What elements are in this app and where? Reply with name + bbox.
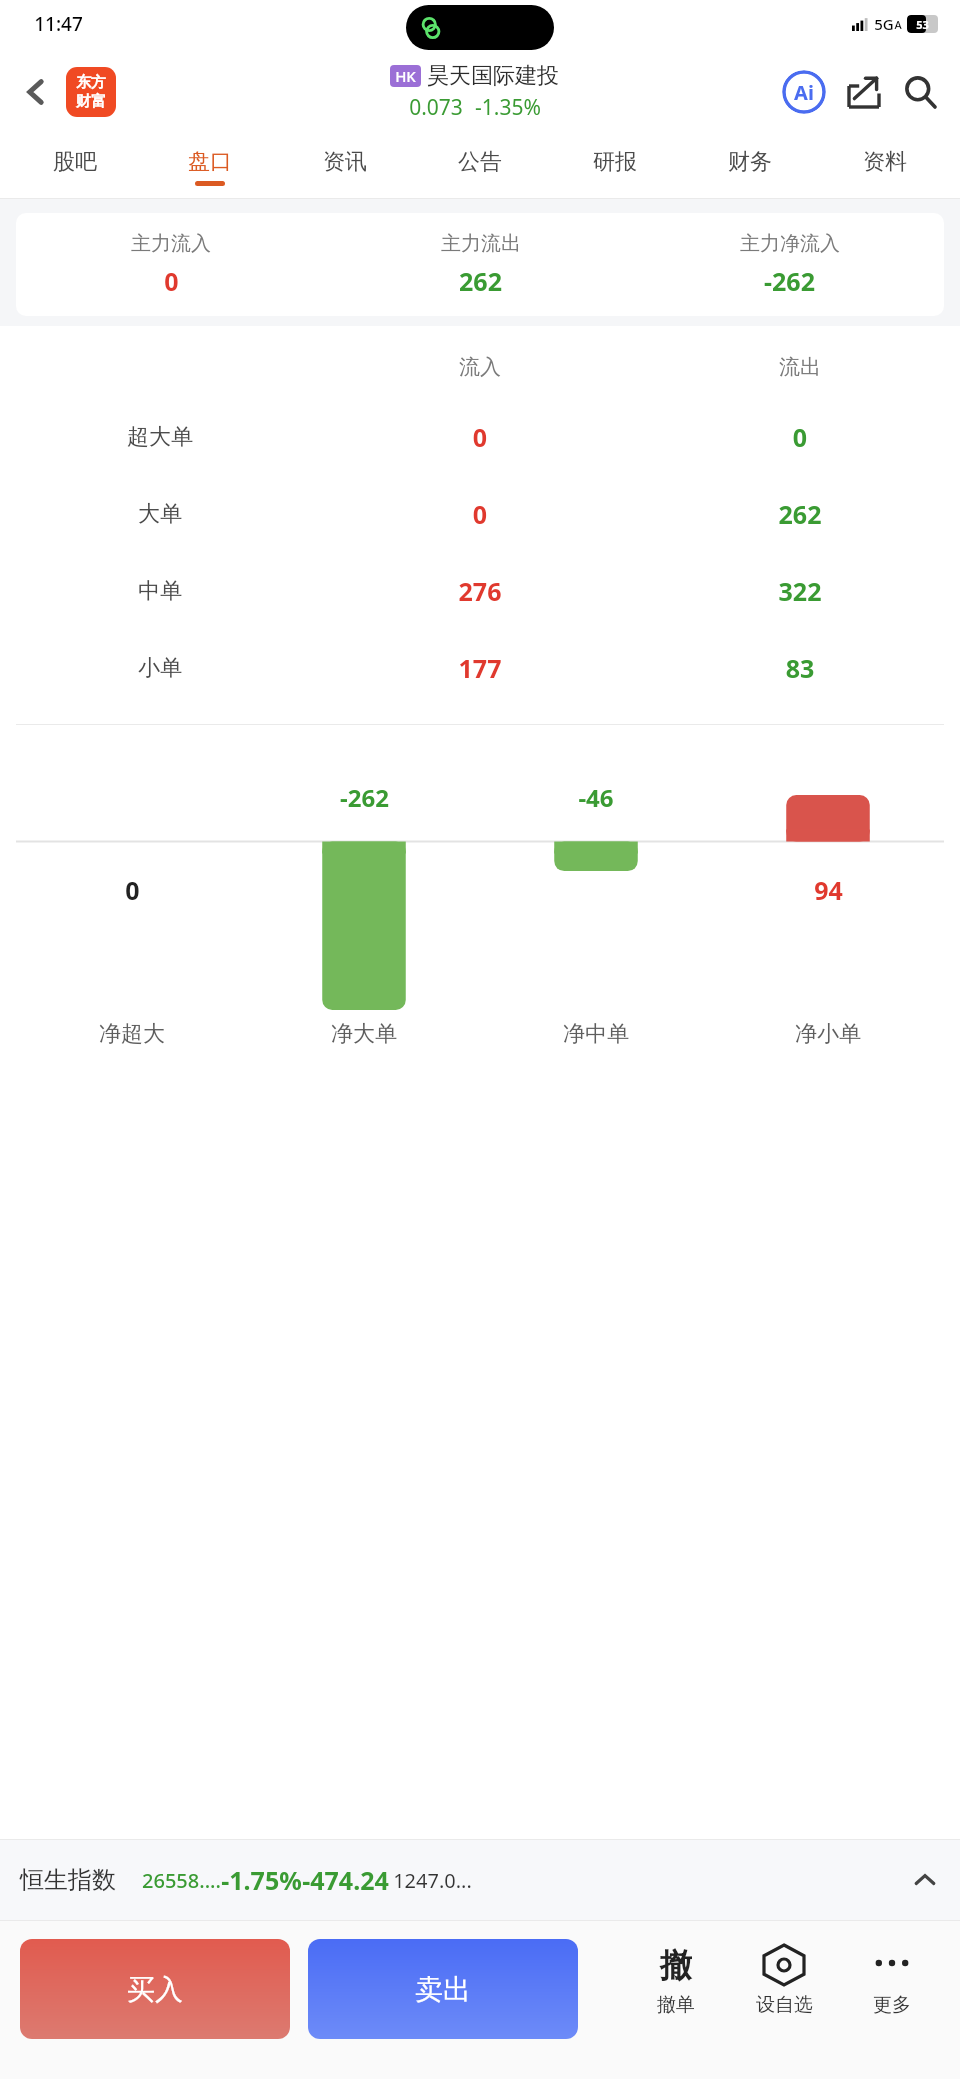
button[interactable]: 资讯	[277, 136, 412, 198]
staticText: 0	[125, 873, 140, 907]
staticText: 主力流入	[131, 231, 211, 256]
staticText: 昊天国际建投	[427, 62, 559, 90]
staticText: 卖出	[415, 1972, 471, 2007]
other: Expand	[910, 1865, 940, 1895]
staticText: 1247.0...	[393, 1867, 472, 1894]
staticText: 净大单	[248, 1020, 480, 1048]
staticText: 更多	[873, 1993, 911, 2017]
staticText: 主力净流入	[740, 231, 840, 256]
staticText: 流出	[640, 354, 960, 380]
staticText: 撤	[660, 1945, 692, 1985]
staticText: 11:47	[34, 11, 83, 37]
staticText: -262	[764, 264, 815, 298]
staticText: 研报	[593, 148, 637, 176]
button[interactable]: 超大单	[0, 398, 960, 475]
button[interactable]: 财务	[682, 136, 817, 198]
staticText: -474.24	[302, 1863, 389, 1897]
staticText: 177	[320, 651, 640, 685]
staticText: 公告	[458, 148, 502, 176]
button[interactable]: 股吧	[8, 136, 142, 198]
staticText: 超大单	[0, 423, 320, 451]
staticText: 恒生指数	[20, 1865, 116, 1895]
staticText: 资讯	[323, 148, 367, 176]
button[interactable]: 小单	[0, 629, 960, 706]
staticText: 94	[814, 873, 843, 907]
button[interactable]: 撤	[628, 1941, 724, 2017]
staticText: 262	[459, 264, 502, 298]
button[interactable]: 公告	[412, 136, 547, 198]
button[interactable]: 设自选	[736, 1941, 832, 2017]
staticText: 东方	[76, 73, 106, 92]
button[interactable]: Search	[894, 66, 946, 118]
staticText: -1.75%	[221, 1863, 302, 1897]
staticText: 26558....	[142, 1867, 221, 1894]
staticText: 大单	[0, 500, 320, 528]
button[interactable]: Back	[10, 66, 62, 118]
staticText: 盘口	[188, 148, 232, 176]
staticText: A	[894, 17, 902, 32]
button[interactable]: AI	[778, 66, 830, 118]
staticText: 净中单	[480, 1020, 712, 1048]
staticText: 中单	[0, 577, 320, 605]
staticText: 主力流出	[441, 231, 521, 256]
staticText: 流入	[320, 354, 640, 380]
button[interactable]: 主力流入	[16, 213, 944, 316]
staticText: 322	[640, 574, 960, 608]
staticText: Ai	[794, 79, 814, 106]
button[interactable]: 更多	[844, 1941, 940, 2017]
staticText: -262	[340, 781, 389, 814]
button[interactable]: 大单	[0, 475, 960, 552]
staticText: 53	[916, 17, 929, 32]
staticText: HK	[395, 66, 416, 86]
staticText: 276	[320, 574, 640, 608]
staticText: 5G	[874, 14, 894, 34]
button[interactable]: 中单	[0, 552, 960, 629]
staticText: 0	[320, 497, 640, 531]
staticText: 买入	[127, 1972, 183, 2007]
staticText: 撤单	[657, 1993, 695, 2017]
staticText: 财富	[76, 92, 106, 111]
button[interactable]: 盘口	[142, 136, 277, 198]
staticText: 净小单	[712, 1020, 944, 1048]
button[interactable]: 资料	[817, 136, 952, 198]
staticText: 净超大	[16, 1020, 248, 1048]
button[interactable]: Share	[838, 66, 890, 118]
staticText: 设自选	[756, 1993, 813, 2017]
button[interactable]: 研报	[547, 136, 682, 198]
staticText: 资料	[863, 148, 907, 176]
staticText: 0	[164, 264, 179, 298]
button[interactable]: 恒生指数	[20, 1840, 940, 1920]
staticText: 0.073	[409, 93, 463, 122]
button[interactable]: 买入	[20, 1939, 290, 2039]
staticText: 262	[640, 497, 960, 531]
staticText: 财务	[728, 148, 772, 176]
staticText: 0	[320, 420, 640, 454]
staticText: -46	[578, 781, 614, 814]
staticText: 小单	[0, 654, 320, 682]
button[interactable]: 东方财富	[66, 67, 116, 117]
staticText: 83	[640, 651, 960, 685]
staticText: -1.35%	[475, 93, 541, 122]
staticText: 0	[640, 420, 960, 454]
staticText: 股吧	[53, 148, 97, 176]
button[interactable]: 卖出	[308, 1939, 578, 2039]
